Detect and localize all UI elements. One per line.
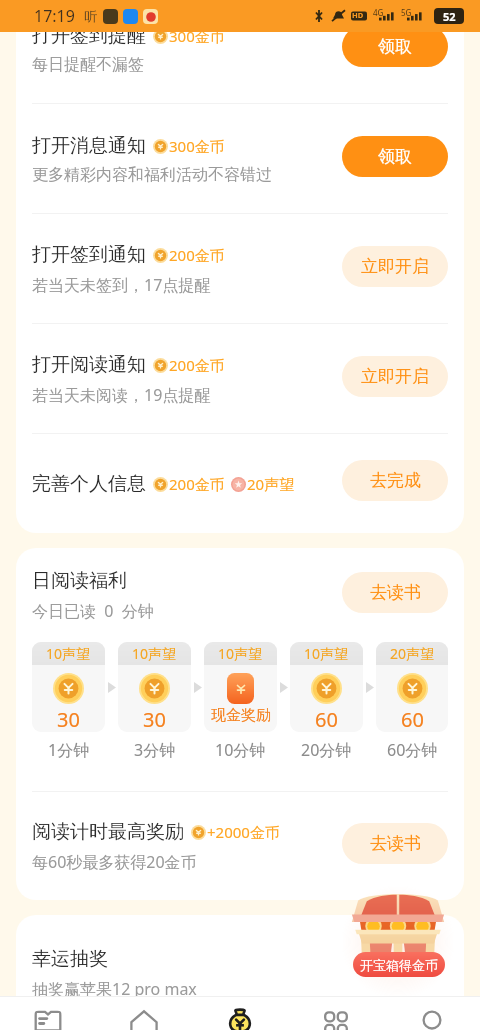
staticText: 10分钟 <box>215 739 266 761</box>
staticText: 3分钟 <box>134 739 176 761</box>
staticText: 200金币 <box>169 474 225 494</box>
button[interactable]: 去完成 <box>342 460 448 501</box>
button[interactable]: 书架 <box>0 1004 96 1030</box>
staticText: 日阅读福利 <box>32 569 127 593</box>
staticText: 52 <box>443 9 456 24</box>
button[interactable]: 去读书 <box>342 572 448 613</box>
staticText: 完善个人信息 <box>32 472 146 496</box>
staticText: 打开签到提醒 <box>32 24 146 48</box>
staticText: 17:19 <box>34 5 75 27</box>
staticText: 立即开启 <box>361 366 429 387</box>
staticText: 1分钟 <box>48 739 90 761</box>
staticText: 60分钟 <box>387 739 438 761</box>
button[interactable]: 打开签到通知 <box>16 214 464 324</box>
button[interactable]: 去读书 <box>342 823 448 864</box>
staticText: 每60秒最多获得20金币 <box>32 851 197 873</box>
staticText: 听 <box>84 8 97 24</box>
button[interactable]: 阅读计时最高奖励 <box>16 792 464 900</box>
staticText: 10声望 <box>304 644 349 663</box>
staticText: +2000金币 <box>207 822 280 842</box>
staticText: 300金币 <box>169 136 225 156</box>
staticText: 30 <box>143 706 166 732</box>
staticText: 开宝箱得金币 <box>360 957 438 973</box>
staticText: HD <box>352 10 364 20</box>
staticText: 领取 <box>378 146 412 167</box>
button[interactable]: 打开签到提醒 <box>16 0 464 104</box>
staticText: 去读书 <box>370 582 421 603</box>
staticText: 今日已读 0 分钟 <box>32 600 154 622</box>
button[interactable]: 领取 <box>342 136 448 177</box>
staticText: 10声望 <box>46 644 91 663</box>
staticText: 幸运抽奖 <box>32 947 108 971</box>
button[interactable]: 福利 <box>192 1004 288 1030</box>
staticText: 抽奖赢苹果12 pro max <box>32 978 197 1000</box>
staticText: 200金币 <box>169 245 225 265</box>
button[interactable]: 领取 <box>342 26 448 67</box>
staticText: 阅读计时最高奖励 <box>32 820 184 844</box>
staticText: 5G <box>401 7 412 18</box>
button[interactable]: 分类 <box>288 1004 384 1030</box>
button[interactable]: 10声望 <box>32 642 105 732</box>
button[interactable]: 完善个人信息 <box>16 434 464 533</box>
button[interactable]: 立即开启 <box>342 356 448 397</box>
staticText: 10声望 <box>132 644 177 663</box>
button[interactable]: 20声望 <box>376 642 448 732</box>
button[interactable]: 10声望 <box>118 642 191 732</box>
staticText: 立即开启 <box>361 256 429 277</box>
staticText: 领取 <box>378 36 412 57</box>
staticText: 20声望 <box>390 644 435 663</box>
staticText: 每日提醒不漏签 <box>32 55 144 75</box>
button[interactable]: 立即开启 <box>342 246 448 287</box>
staticText: 现金奖励 <box>211 706 271 725</box>
staticText: 打开阅读通知 <box>32 353 146 377</box>
button[interactable]: 打开阅读通知 <box>16 324 464 434</box>
staticText: 20声望 <box>247 474 295 494</box>
staticText: 打开签到通知 <box>32 243 146 267</box>
staticText: 4G <box>373 7 384 18</box>
staticText: 60 <box>315 706 338 732</box>
staticText: 60 <box>401 706 424 732</box>
button[interactable]: 10声望 <box>204 642 277 732</box>
button[interactable]: 开宝箱得金币 <box>353 952 445 977</box>
button[interactable]: 首页 <box>96 1004 192 1030</box>
button[interactable]: 10声望 <box>290 642 363 732</box>
button[interactable]: 打开消息通知 <box>16 104 464 214</box>
staticText: 10声望 <box>218 644 263 663</box>
staticText: 更多精彩内容和福利活动不容错过 <box>32 165 272 185</box>
staticText: 20分钟 <box>301 739 352 761</box>
staticText: 30 <box>57 706 80 732</box>
staticText: 若当天未阅读，19点提醒 <box>32 384 211 406</box>
staticText: 打开消息通知 <box>32 134 146 158</box>
staticText: 去完成 <box>370 470 421 491</box>
staticText: 200金币 <box>169 355 225 375</box>
staticText: 300金币 <box>169 26 225 46</box>
staticText: 去读书 <box>370 833 421 854</box>
staticText: 若当天未签到，17点提醒 <box>32 274 211 296</box>
button[interactable]: 我的 <box>384 1004 480 1030</box>
